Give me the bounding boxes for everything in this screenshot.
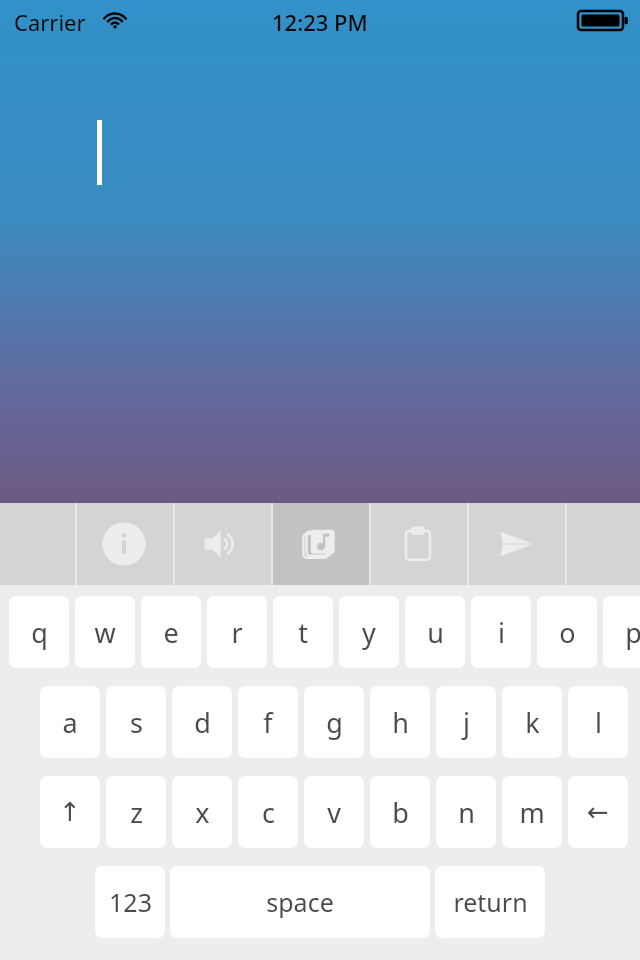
button[interactable]: u <box>405 596 465 668</box>
button[interactable]: g <box>304 686 364 758</box>
button[interactable]: o <box>537 596 597 668</box>
button[interactable]: space <box>170 866 430 938</box>
staticText: y <box>362 614 376 651</box>
staticText: return <box>453 885 528 919</box>
staticText: q <box>31 614 48 651</box>
button[interactable]: a <box>40 686 100 758</box>
button[interactable]: m <box>502 776 562 848</box>
button[interactable]: q <box>9 596 69 668</box>
button[interactable]: c <box>238 776 298 848</box>
staticText: t <box>298 614 308 651</box>
button[interactable]: b <box>370 776 430 848</box>
button[interactable]: Shift <box>40 776 100 848</box>
staticText: 123 <box>109 885 152 919</box>
button[interactable]: l <box>568 686 628 758</box>
staticText: l <box>595 704 602 741</box>
staticText: u <box>427 614 444 651</box>
button[interactable]: r <box>207 596 267 668</box>
button[interactable]: z <box>106 776 166 848</box>
button[interactable]: return <box>435 866 545 938</box>
button[interactable]: d <box>172 686 232 758</box>
button[interactable]: s <box>106 686 166 758</box>
staticText: ← <box>587 797 609 827</box>
staticText: s <box>130 704 143 741</box>
button[interactable]: t <box>273 596 333 668</box>
button[interactable]: v <box>304 776 364 848</box>
button[interactable]: 123 <box>95 866 165 938</box>
staticText: z <box>130 794 143 831</box>
staticText: k <box>525 704 540 741</box>
staticText: h <box>392 704 409 741</box>
button[interactable]: x <box>172 776 232 848</box>
button[interactable]: Send <box>467 503 565 585</box>
staticText: n <box>458 794 475 831</box>
button[interactable]: w <box>75 596 135 668</box>
staticText: e <box>163 614 179 651</box>
staticText: b <box>392 794 409 831</box>
button[interactable]: e <box>141 596 201 668</box>
staticText: a <box>62 704 78 741</box>
staticText: p <box>625 614 640 651</box>
staticText: Carrier <box>14 7 86 37</box>
button[interactable]: p <box>603 596 640 668</box>
button[interactable]: Backspace <box>568 776 628 848</box>
button[interactable]: Music library <box>271 503 369 585</box>
staticText: v <box>327 794 341 831</box>
button[interactable]: y <box>339 596 399 668</box>
staticText: c <box>262 794 275 831</box>
staticText: ↑ <box>59 797 81 827</box>
button[interactable]: n <box>436 776 496 848</box>
staticText: d <box>194 704 211 741</box>
staticText: x <box>195 794 210 831</box>
staticText: i <box>498 614 505 651</box>
staticText: r <box>231 614 243 651</box>
button[interactable]: f <box>238 686 298 758</box>
staticText: w <box>94 614 116 651</box>
staticText: f <box>263 704 273 741</box>
button[interactable]: Info <box>75 503 173 585</box>
button[interactable]: Sound <box>173 503 271 585</box>
staticText: space <box>266 885 334 919</box>
button[interactable]: i <box>471 596 531 668</box>
staticText: g <box>326 704 343 741</box>
button[interactable]: h <box>370 686 430 758</box>
staticText: j <box>463 704 470 741</box>
staticText: 12:23 PM <box>272 7 368 37</box>
button[interactable]: Clipboard <box>369 503 467 585</box>
button[interactable]: j <box>436 686 496 758</box>
button[interactable]: k <box>502 686 562 758</box>
staticText: o <box>559 614 576 651</box>
staticText: m <box>519 794 545 831</box>
